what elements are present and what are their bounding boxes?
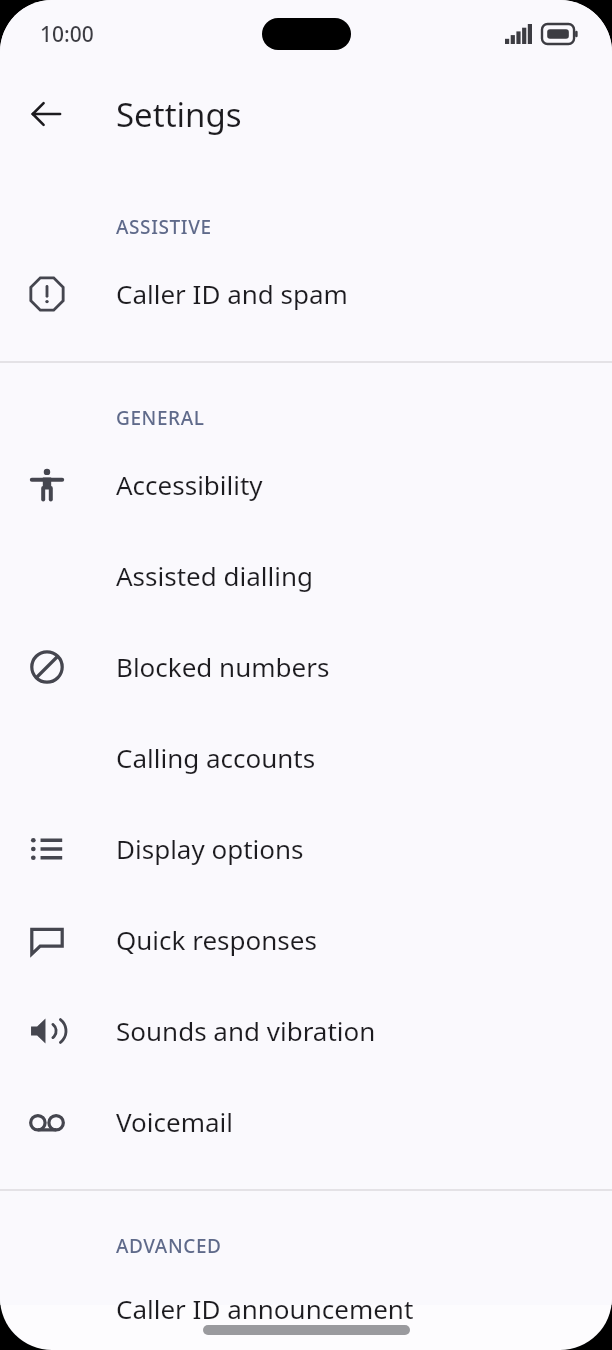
button[interactable]: Back: [16, 84, 76, 144]
staticText: Assisted dialling: [116, 558, 313, 593]
staticText: Calling accounts: [116, 740, 316, 775]
button[interactable]: Display options: [0, 803, 612, 894]
button[interactable]: Caller ID announcement: [0, 1267, 612, 1350]
staticText: Voicemail: [116, 1104, 233, 1139]
staticText: Blocked numbers: [116, 649, 330, 684]
staticText: Quick responses: [116, 922, 317, 957]
staticText: Accessibility: [116, 467, 263, 502]
button[interactable]: Sounds and vibration: [0, 985, 612, 1076]
staticText: Caller ID and spam: [116, 276, 348, 311]
staticText: Sounds and vibration: [116, 1013, 376, 1048]
button[interactable]: Accessibility: [0, 439, 612, 530]
staticText: ADVANCED: [116, 1233, 222, 1259]
button[interactable]: Caller ID and spam: [0, 248, 612, 339]
staticText: GENERAL: [116, 405, 205, 431]
button[interactable]: Assisted dialling: [0, 530, 612, 621]
staticText: ASSISTIVE: [116, 214, 212, 240]
staticText: Display options: [116, 831, 304, 866]
staticText: Caller ID announcement: [116, 1291, 414, 1326]
staticText: 10:00: [40, 20, 94, 49]
staticText: Settings: [116, 92, 242, 137]
button[interactable]: Voicemail: [0, 1076, 612, 1167]
button[interactable]: Calling accounts: [0, 712, 612, 803]
button[interactable]: Quick responses: [0, 894, 612, 985]
button[interactable]: Blocked numbers: [0, 621, 612, 712]
